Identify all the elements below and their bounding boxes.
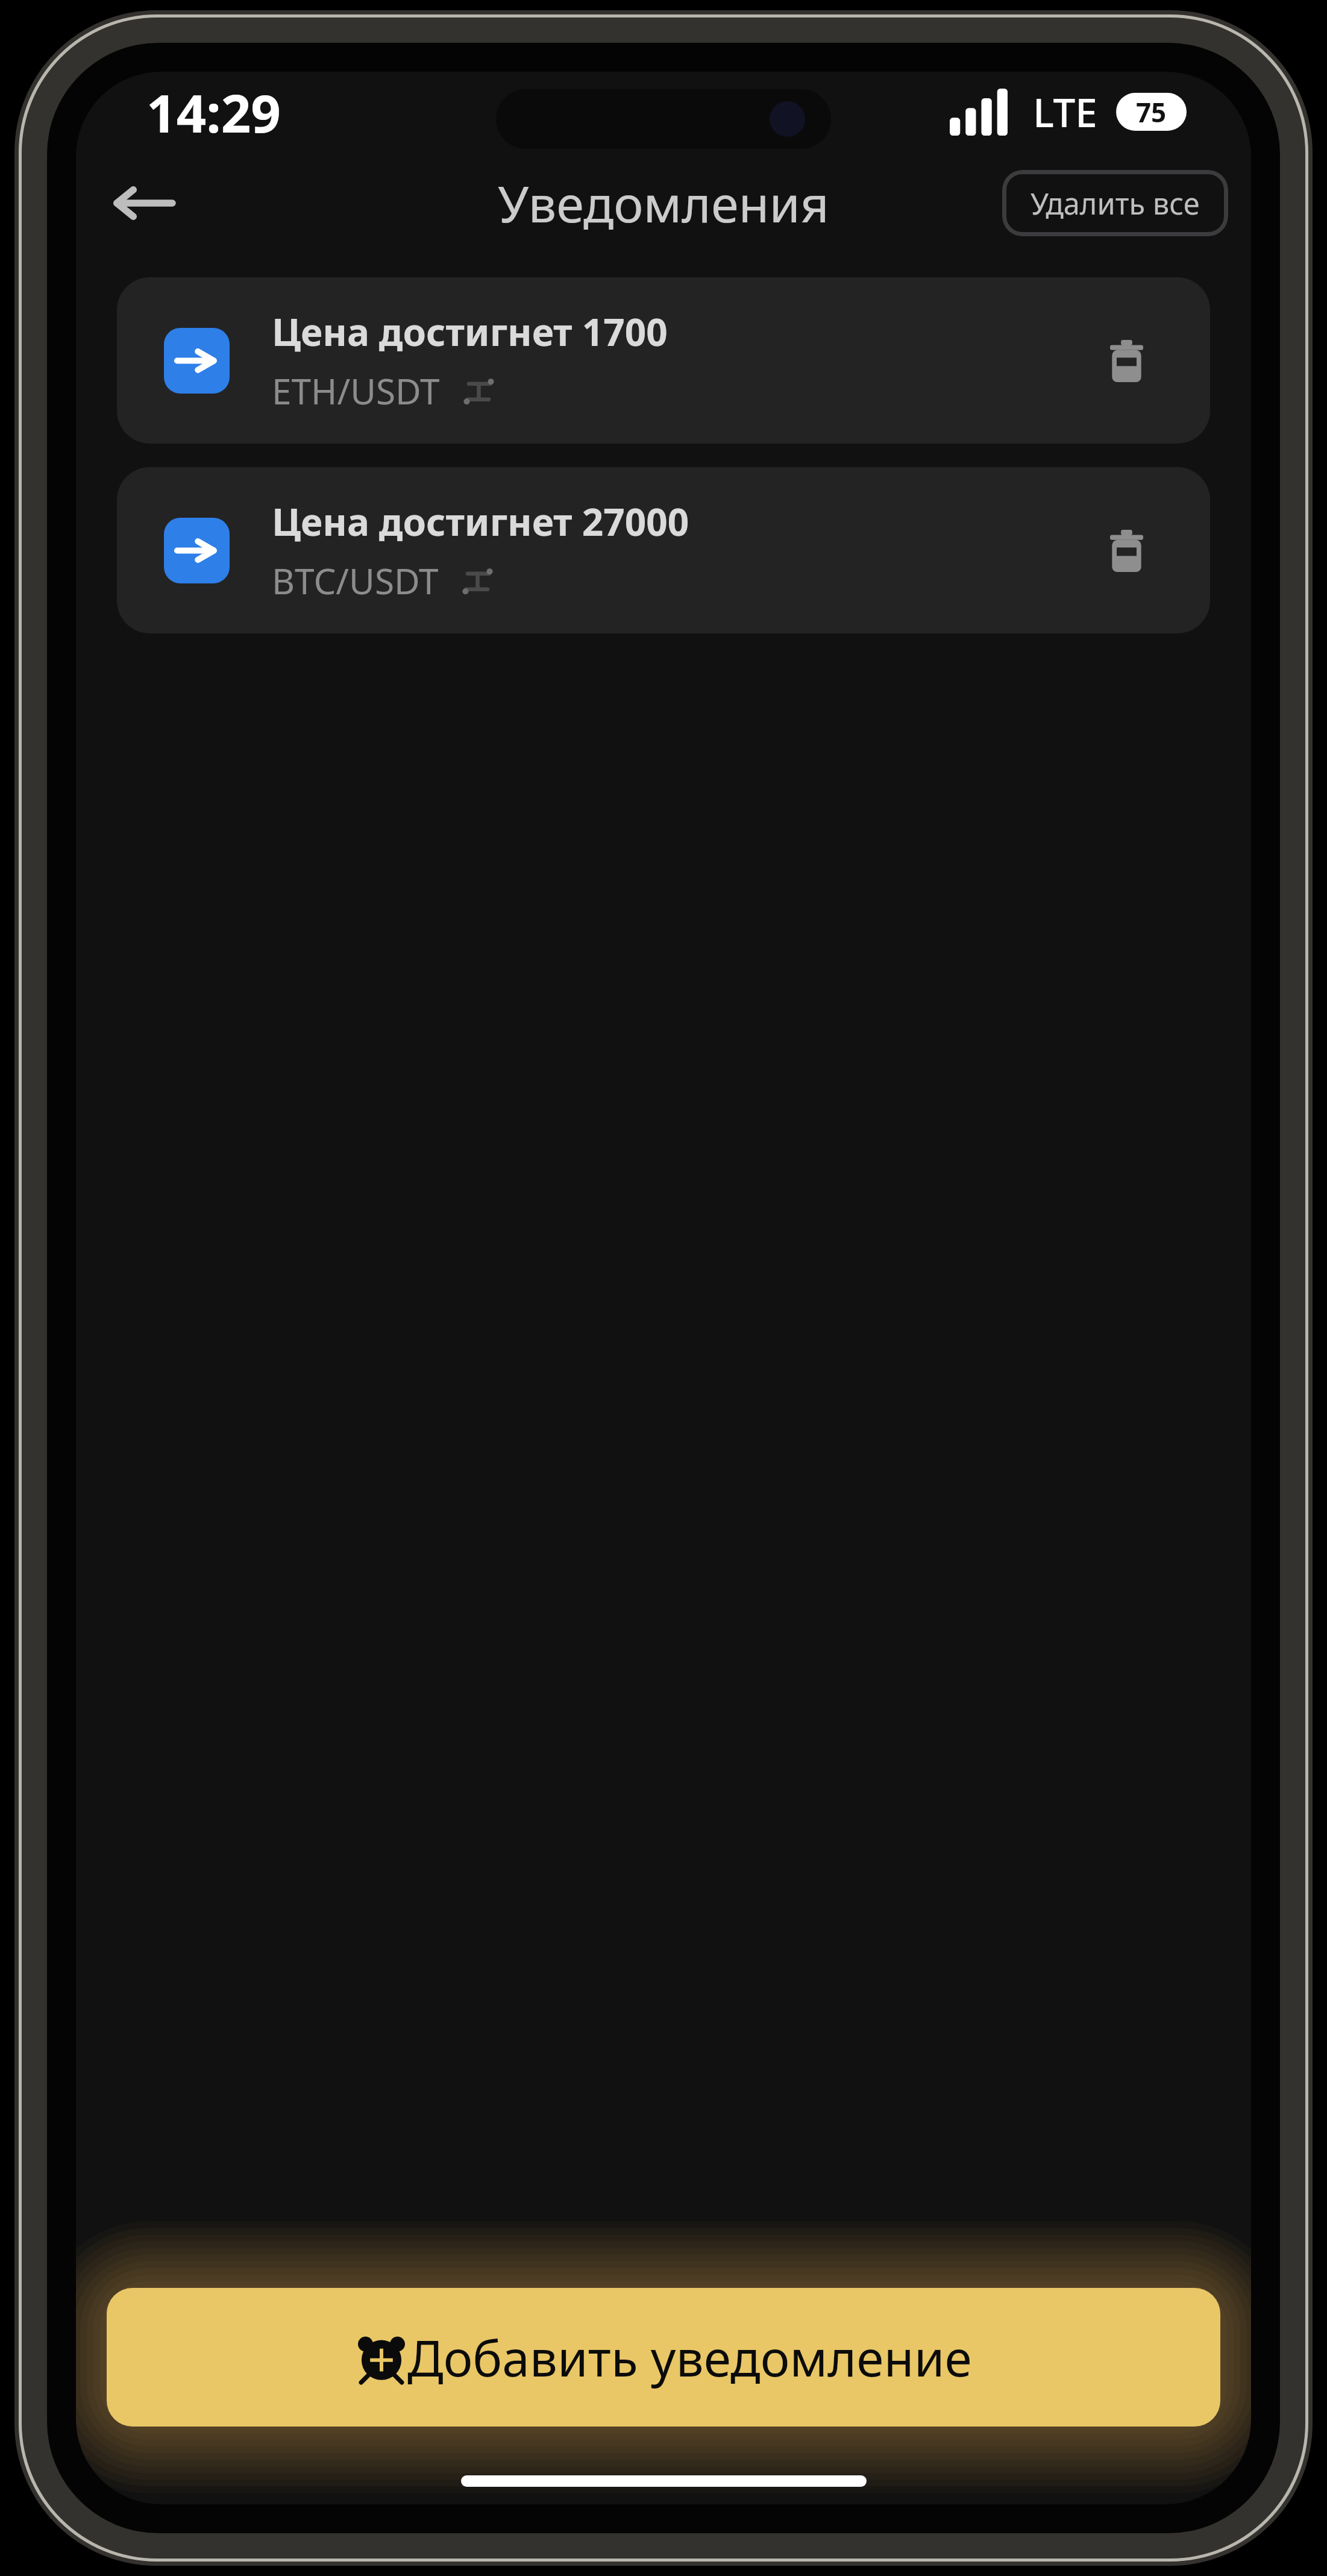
staticText: LTE bbox=[1033, 85, 1097, 139]
staticText: ETH/USDT bbox=[272, 366, 440, 415]
button[interactable]: Цена достигнет 1700 bbox=[117, 277, 1210, 444]
staticText: Удалить все bbox=[1031, 183, 1200, 223]
button[interactable]: Удалить bbox=[1090, 514, 1163, 587]
staticText: 75 bbox=[1136, 94, 1167, 130]
button[interactable]: Удалить все bbox=[1002, 170, 1228, 236]
staticText: 14:29 bbox=[146, 77, 281, 148]
staticText: BTC/USDT bbox=[272, 556, 439, 605]
staticText: Цена достигнет 1700 bbox=[272, 306, 668, 357]
staticText: Цена достигнет 27000 bbox=[272, 496, 689, 547]
button[interactable]: Назад bbox=[99, 166, 187, 239]
staticText: Уведомления bbox=[498, 169, 829, 237]
button[interactable]: Цена достигнет 27000 bbox=[117, 467, 1210, 633]
button[interactable]: Удалить bbox=[1090, 324, 1163, 397]
button[interactable]: Добавить уведомление bbox=[107, 2288, 1220, 2427]
staticText: Добавить уведомление bbox=[407, 2323, 972, 2391]
